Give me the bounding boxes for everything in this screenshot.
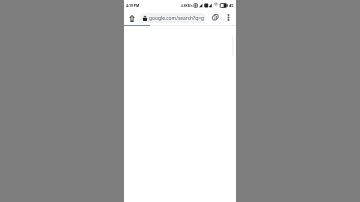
button[interactable]: Home bbox=[127, 13, 137, 23]
staticText: 4:19 PM bbox=[126, 3, 140, 8]
staticText: google.com/search?q=g bbox=[149, 15, 205, 22]
staticText: 45 bbox=[229, 3, 234, 8]
button[interactable]: google.com/search?q=g bbox=[139, 13, 206, 23]
staticText: 4 bbox=[214, 17, 216, 21]
button[interactable]: Switch tabs, 4 open bbox=[210, 12, 220, 22]
button[interactable]: More options bbox=[223, 12, 233, 22]
staticText: 4.8KB/s bbox=[181, 4, 193, 8]
